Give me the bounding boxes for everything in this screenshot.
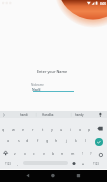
staticText: v xyxy=(43,151,45,156)
staticText: e xyxy=(22,127,25,132)
button[interactable]: a xyxy=(4,135,13,146)
button[interactable]: q xyxy=(0,124,8,135)
staticText: x xyxy=(24,151,26,156)
button[interactable]: e xyxy=(19,124,28,135)
button[interactable]: k xyxy=(71,135,80,146)
staticText: p xyxy=(88,127,91,132)
button[interactable]: ? xyxy=(87,148,95,159)
button[interactable]: o xyxy=(76,124,85,135)
button[interactable]: n xyxy=(58,148,67,159)
staticText: g xyxy=(46,138,49,143)
staticText: f xyxy=(37,138,39,143)
staticText: a xyxy=(7,138,10,143)
button[interactable]: Handika xyxy=(40,112,56,118)
staticText: handy xyxy=(75,113,84,117)
staticText: s xyxy=(18,138,20,143)
staticText: k xyxy=(75,138,77,143)
staticText: Nickname xyxy=(31,83,44,87)
staticText: l xyxy=(85,138,86,143)
button[interactable]: u xyxy=(57,124,66,135)
button[interactable]: m xyxy=(68,148,77,159)
button[interactable]: p xyxy=(85,124,94,135)
staticText: ?123 xyxy=(93,162,99,166)
staticText: y xyxy=(51,127,53,132)
button[interactable]: r xyxy=(28,124,37,135)
staticText: t xyxy=(42,127,44,132)
staticText: i xyxy=(70,127,71,132)
button[interactable]: v xyxy=(39,148,48,159)
button[interactable]: handi xyxy=(17,112,31,118)
button[interactable]: l xyxy=(81,135,90,146)
button[interactable]: , xyxy=(14,159,20,168)
staticText: Nadil xyxy=(32,87,41,92)
button[interactable]: x xyxy=(20,148,29,159)
button[interactable]: h xyxy=(52,135,61,146)
button[interactable]: ! xyxy=(78,148,86,159)
button[interactable]: f xyxy=(33,135,42,146)
staticText: Handika xyxy=(42,113,54,117)
staticText: z xyxy=(14,151,16,156)
button[interactable]: t xyxy=(38,124,47,135)
staticText: o xyxy=(79,127,82,132)
staticText: , xyxy=(17,161,18,166)
button[interactable]: b xyxy=(49,148,58,159)
staticText: ?123 xyxy=(5,162,11,166)
button[interactable]: s xyxy=(14,135,23,146)
button[interactable] xyxy=(33,82,74,93)
button[interactable] xyxy=(22,171,34,181)
staticText: ? xyxy=(90,151,92,156)
staticText: Enter your Name xyxy=(37,69,68,74)
button[interactable]: j xyxy=(62,135,71,146)
button[interactable]: g xyxy=(43,135,52,146)
staticText: r xyxy=(32,127,34,132)
button[interactable]: w xyxy=(9,124,18,135)
button[interactable] xyxy=(95,138,103,146)
button[interactable]: z xyxy=(10,148,19,159)
staticText: 8:00 xyxy=(100,2,106,6)
staticText: c xyxy=(33,151,35,156)
staticText: w xyxy=(12,127,15,132)
staticText: handi xyxy=(20,113,28,117)
button[interactable]: i xyxy=(66,124,75,135)
staticText: h xyxy=(55,138,58,143)
staticText: b xyxy=(52,151,55,156)
button[interactable]: y xyxy=(47,124,56,135)
button[interactable]: d xyxy=(23,135,32,146)
button[interactable] xyxy=(47,171,59,181)
staticText: q xyxy=(2,127,5,132)
button[interactable]: handy xyxy=(72,112,86,118)
button[interactable]: ?123 xyxy=(2,159,14,168)
staticText: n xyxy=(61,151,64,156)
staticText: m xyxy=(71,151,75,156)
staticText: ! xyxy=(82,151,83,156)
staticText: u xyxy=(60,127,63,132)
staticText: j xyxy=(66,138,67,143)
staticText: d xyxy=(26,138,29,143)
button[interactable]: c xyxy=(29,148,38,159)
button[interactable] xyxy=(73,171,85,181)
button[interactable]: ?123 xyxy=(90,159,102,168)
